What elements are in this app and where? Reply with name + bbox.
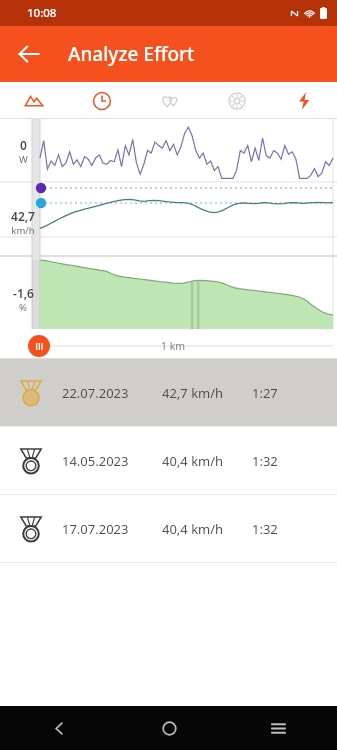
staticText: -1,6 [13,285,34,301]
staticText: 42,7 km/h [162,384,252,402]
staticText: 0 [20,137,27,153]
button[interactable]: Recent apps [257,707,299,749]
button[interactable]: 17.07.2023 [0,495,337,562]
button[interactable]: Home [148,707,190,749]
button[interactable]: 22.07.2023 [0,359,337,426]
staticText: 22.07.2023 [62,384,162,402]
staticText: 40,4 km/h [162,452,252,470]
staticText: 17.07.2023 [62,520,162,538]
staticText: Analyze Effort [68,41,195,67]
staticText: 1:32 [252,452,278,470]
staticText: W [19,153,28,166]
button[interactable]: Cadence [203,82,270,119]
staticText: 42,7 [11,208,35,224]
staticText: 10:08 [27,5,57,21]
staticText: 1:32 [252,520,278,538]
button[interactable]: Heart rate [136,82,203,119]
staticText: km/h [11,224,35,237]
button[interactable]: Elevation [0,82,68,119]
staticText: 1 km [161,339,186,353]
button[interactable]: Time [68,82,136,119]
button[interactable]: Back [38,707,80,749]
staticText: 14.05.2023 [62,452,162,470]
button[interactable]: 14.05.2023 [0,427,337,494]
staticText: % [19,301,27,314]
staticText: 40,4 km/h [162,520,252,538]
button[interactable]: Power [270,82,337,119]
button[interactable]: Pause [28,335,50,357]
staticText: 1:27 [252,384,278,402]
button[interactable]: Back [6,31,52,77]
